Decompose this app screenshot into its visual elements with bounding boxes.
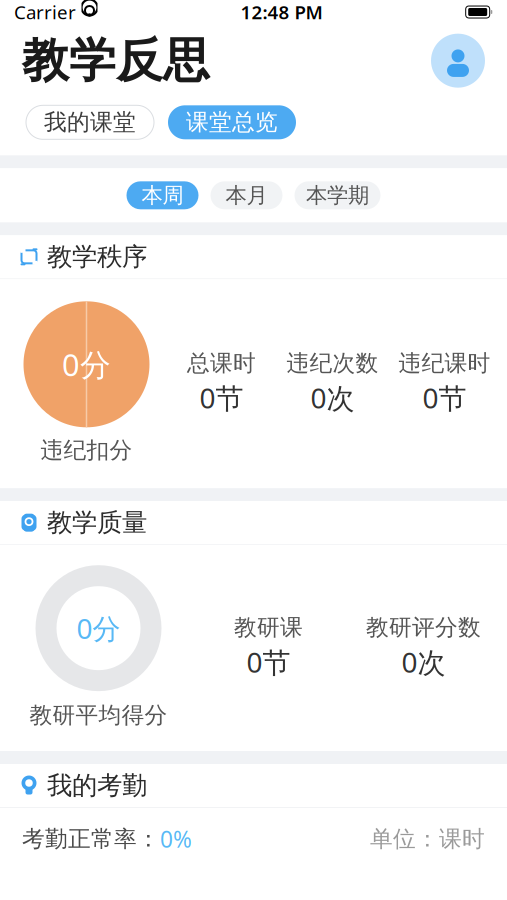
staticText: 教研评分数: [366, 614, 481, 641]
staticText: Carrier: [14, 0, 76, 24]
staticText: 我的考勤: [47, 770, 147, 801]
button[interactable]: 本学期: [294, 181, 380, 209]
button[interactable]: Profile: [431, 34, 485, 88]
staticText: 教研课: [234, 614, 303, 641]
button[interactable]: 我的课堂: [26, 105, 154, 139]
staticText: 0节: [199, 379, 243, 416]
staticText: 本月: [225, 182, 267, 208]
staticText: 0节: [422, 379, 466, 416]
staticText: 教学反思: [22, 32, 210, 89]
staticText: 0次: [401, 643, 445, 681]
staticText: 0次: [310, 379, 354, 416]
staticText: 我的课堂: [44, 108, 136, 136]
button[interactable]: 本周: [126, 181, 198, 209]
staticText: 教研平均得分: [29, 701, 167, 729]
button[interactable]: 本月: [210, 181, 282, 209]
staticText: 12:48 PM: [240, 0, 322, 24]
staticText: 0分: [62, 344, 111, 385]
button[interactable]: 课堂总览: [168, 105, 296, 139]
staticText: 本周: [141, 182, 183, 208]
staticText: 违纪次数: [286, 349, 378, 377]
staticText: 单位：课时: [370, 825, 485, 853]
staticText: 总课时: [187, 349, 256, 377]
staticText: 本学期: [306, 182, 369, 208]
staticText: 违纪扣分: [40, 436, 132, 464]
staticText: 0%: [160, 824, 192, 854]
staticText: 课堂总览: [186, 108, 278, 136]
staticText: 教学质量: [47, 507, 147, 538]
staticText: 教学秩序: [47, 241, 147, 272]
staticText: 0分: [76, 610, 120, 647]
staticText: 考勤正常率：: [22, 825, 160, 853]
staticText: 违纪课时: [398, 349, 490, 377]
staticText: 0节: [246, 643, 290, 681]
